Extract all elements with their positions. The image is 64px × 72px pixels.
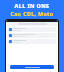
staticText: ALL IN ONE <box>0 2 64 9</box>
button[interactable] <box>8 33 56 38</box>
button[interactable] <box>8 27 56 32</box>
button[interactable] <box>10 65 54 69</box>
button[interactable] <box>8 39 56 44</box>
button[interactable]: Search <box>6 22 58 26</box>
staticText: Car, CDL, Moto <box>0 10 64 17</box>
